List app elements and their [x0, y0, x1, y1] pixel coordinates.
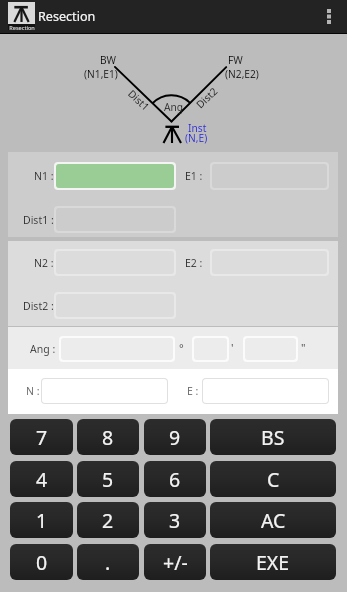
staticText: E2 :	[185, 256, 203, 270]
staticText: BW	[100, 53, 117, 67]
staticText: N :	[26, 384, 40, 398]
staticText: (N2,E2)	[225, 67, 259, 81]
staticText: EXE	[256, 549, 290, 576]
button[interactable]: More options	[314, 0, 344, 33]
button[interactable]: 8	[77, 419, 139, 455]
staticText: Ang	[164, 100, 184, 114]
staticText: 9	[169, 424, 181, 451]
button[interactable]	[56, 164, 174, 188]
staticText: 7	[36, 424, 48, 451]
button[interactable]: 2	[77, 502, 139, 538]
button[interactable]: 4	[10, 461, 73, 497]
staticText: +/-	[163, 549, 188, 576]
button[interactable]: 6	[144, 461, 206, 497]
staticText: 2	[102, 507, 114, 534]
button[interactable]: BS	[210, 419, 336, 455]
staticText: Inst	[188, 121, 207, 135]
staticText: AC	[261, 507, 286, 534]
button[interactable]: 9	[144, 419, 206, 455]
staticText: Ang :	[30, 342, 56, 356]
staticText: Dist1 :	[23, 213, 54, 227]
button[interactable]: 5	[77, 461, 139, 497]
button[interactable]: .	[77, 544, 139, 580]
staticText: 6	[169, 466, 181, 493]
staticText: E :	[187, 384, 199, 398]
staticText: C	[267, 466, 280, 493]
staticText: Dist2 :	[23, 299, 54, 313]
staticText: E1 :	[185, 169, 203, 183]
button[interactable]: C	[210, 461, 336, 497]
staticText: N1 :	[34, 169, 54, 183]
staticText: Dist2	[193, 84, 221, 111]
button[interactable]: 7	[10, 419, 73, 455]
staticText: 3	[169, 507, 181, 534]
staticText: (N1,E1)	[84, 67, 118, 81]
staticText: 8	[102, 424, 114, 451]
button[interactable]: EXE	[210, 544, 336, 580]
button[interactable]: 0	[10, 544, 73, 580]
button[interactable]: AC	[210, 502, 336, 538]
staticText: '	[231, 340, 234, 355]
staticText: (N,E)	[185, 131, 208, 145]
staticText: "	[301, 340, 306, 355]
staticText: Resection	[38, 8, 96, 25]
staticText: 5	[102, 466, 114, 493]
button[interactable]: 1	[10, 502, 73, 538]
button[interactable]: 3	[144, 502, 206, 538]
button[interactable]: +/-	[144, 544, 206, 580]
staticText: BS	[261, 424, 285, 451]
staticText: Dist1	[125, 86, 153, 114]
staticText: °	[179, 340, 184, 355]
staticText: 4	[36, 466, 48, 493]
staticText: Resection	[9, 24, 35, 30]
staticText: FW	[228, 53, 243, 67]
staticText: 0	[36, 549, 48, 576]
staticText: 1	[36, 507, 48, 534]
staticText: .	[105, 549, 111, 576]
staticText: N2 :	[34, 256, 54, 270]
